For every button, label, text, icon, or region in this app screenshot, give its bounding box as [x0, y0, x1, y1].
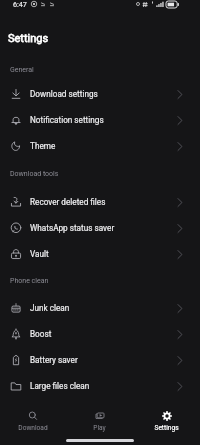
staticText: Notification settings	[30, 115, 104, 125]
staticText: Theme	[30, 141, 56, 151]
staticText: Download	[18, 424, 48, 432]
button[interactable]: Play	[66, 400, 133, 434]
staticText: Boost	[30, 329, 52, 339]
button[interactable]: Download	[0, 400, 66, 434]
button[interactable]: Download settings	[0, 81, 200, 107]
button[interactable]: Junk clean	[0, 295, 200, 321]
staticText: Settings	[8, 32, 49, 45]
staticText: Play	[93, 424, 106, 432]
staticText: Vault	[30, 249, 49, 259]
staticText: Download settings	[30, 89, 98, 99]
staticText: General	[10, 66, 34, 74]
button[interactable]: Boost	[0, 321, 200, 347]
staticText: 6:47	[13, 0, 27, 8]
button[interactable]: Settings	[133, 400, 200, 434]
button[interactable]: Theme	[0, 133, 200, 159]
staticText: Large files clean	[30, 381, 90, 391]
staticText: Download tools	[10, 170, 59, 178]
button[interactable]: Large files clean	[0, 373, 200, 399]
staticText: Recover deleted files	[30, 197, 106, 207]
staticText: Battery saver	[30, 355, 78, 365]
staticText: Junk clean	[30, 303, 70, 313]
button[interactable]: WhatsApp status saver	[0, 215, 200, 241]
button[interactable]: Notification settings	[0, 107, 200, 133]
staticText: Settings	[154, 424, 179, 432]
button[interactable]: Battery saver	[0, 347, 200, 373]
staticText: Phone clean	[10, 277, 49, 285]
staticText: WhatsApp status saver	[30, 223, 115, 233]
button[interactable]: Recover deleted files	[0, 189, 200, 215]
button[interactable]: Vault	[0, 241, 200, 267]
